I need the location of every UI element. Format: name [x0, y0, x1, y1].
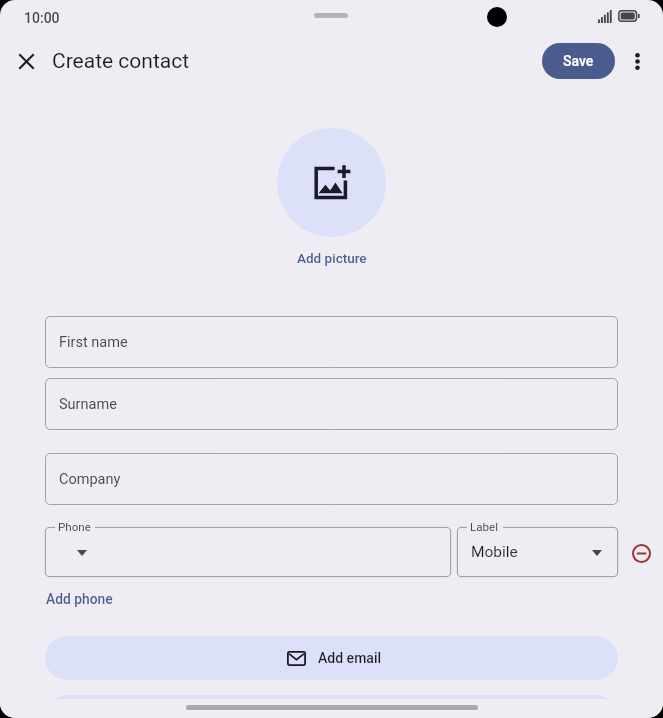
staticText: 10:00 [24, 10, 60, 26]
button[interactable]: Surname [45, 378, 618, 430]
button[interactable]: Add phone [44, 589, 115, 609]
button[interactable]: Add picture [277, 128, 386, 237]
staticText: Company [59, 471, 121, 488]
button[interactable]: More options [617, 41, 657, 81]
staticText: Label [470, 520, 499, 534]
staticText: Create contact [52, 49, 190, 74]
staticText: First name [59, 334, 128, 351]
button[interactable]: Add email [45, 636, 618, 680]
staticText: Surname [59, 396, 117, 413]
button[interactable]: Close [4, 39, 48, 83]
staticText: Mobile [471, 543, 518, 561]
staticText: Add email [318, 650, 382, 666]
button[interactable]: First name [45, 316, 618, 368]
button[interactable]: Label [457, 527, 618, 577]
staticText: Add address [311, 709, 390, 718]
button[interactable]: Save [542, 43, 615, 79]
button[interactable]: Remove phone [626, 538, 657, 569]
button[interactable]: Phone [45, 527, 451, 577]
button[interactable]: Add picture [295, 248, 369, 268]
staticText: Save [563, 53, 594, 69]
button[interactable]: Add address [45, 695, 618, 718]
staticText: Phone [58, 520, 91, 534]
button[interactable]: Company [45, 453, 618, 505]
